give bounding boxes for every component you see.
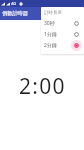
- button[interactable]: 2分鐘: [41, 40, 84, 51]
- button[interactable]: 1分鐘: [41, 29, 84, 40]
- button[interactable]: 30秒: [41, 18, 84, 29]
- staticText: 2:00: [19, 72, 66, 101]
- staticText: 倒數計時器: [2, 10, 28, 17]
- staticText: 計時長度: [44, 10, 62, 16]
- staticText: 30秒: [44, 20, 55, 27]
- staticText: 4G: [11, 1, 17, 6]
- staticText: 2分鐘: [44, 42, 57, 49]
- staticText: 1分鐘: [44, 31, 57, 38]
